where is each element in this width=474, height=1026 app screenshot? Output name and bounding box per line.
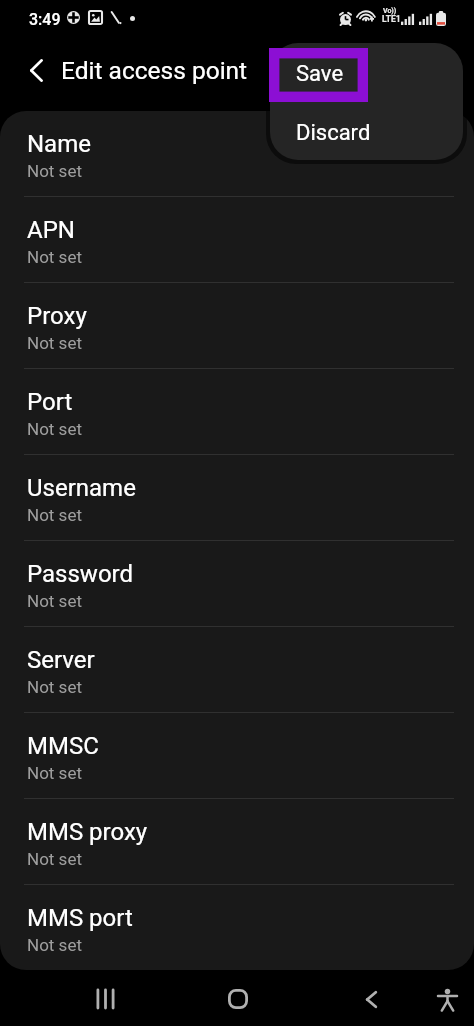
staticText: Not set: [27, 333, 82, 353]
staticText: Discard: [296, 120, 371, 146]
staticText: Not set: [27, 763, 82, 783]
button[interactable]: MMSC: [0, 713, 474, 799]
button[interactable]: APN: [0, 197, 474, 283]
staticText: Username: [27, 474, 136, 502]
button[interactable]: Server: [0, 627, 474, 713]
button[interactable]: Username: [0, 455, 474, 541]
staticText: Save: [296, 61, 344, 87]
staticText: Password: [27, 560, 134, 588]
button[interactable]: Accessibility: [416, 970, 474, 1026]
staticText: APN: [27, 216, 75, 244]
staticText: Not set: [27, 161, 82, 181]
button[interactable]: Back: [12, 48, 56, 92]
button[interactable]: Recent apps: [72, 970, 138, 1026]
staticText: Not set: [27, 419, 82, 439]
button[interactable]: Discard: [270, 104, 463, 160]
staticText: Not set: [27, 849, 82, 869]
button[interactable]: Name: [0, 111, 474, 197]
staticText: Not set: [27, 677, 82, 697]
staticText: 3:49: [29, 10, 61, 29]
button[interactable]: MMS proxy: [0, 799, 474, 885]
staticText: MMSC: [27, 732, 99, 760]
staticText: Not set: [27, 935, 82, 955]
button[interactable]: MMS port: [0, 885, 474, 970]
staticText: LTE1: [382, 14, 401, 24]
button[interactable]: Save: [264, 43, 373, 107]
button[interactable]: Home: [205, 970, 271, 1026]
staticText: Name: [27, 130, 91, 158]
staticText: Not set: [27, 505, 82, 525]
staticText: Not set: [27, 591, 82, 611]
button[interactable]: Port: [0, 369, 474, 455]
staticText: Proxy: [27, 302, 87, 330]
button[interactable]: Password: [0, 541, 474, 627]
staticText: Vo)): [383, 7, 397, 15]
staticText: Edit access point: [61, 56, 248, 85]
staticText: MMS port: [27, 904, 133, 932]
staticText: Port: [27, 388, 73, 416]
staticText: Not set: [27, 247, 82, 267]
staticText: Server: [27, 646, 95, 674]
button[interactable]: Back: [338, 970, 404, 1026]
button[interactable]: Proxy: [0, 283, 474, 369]
staticText: MMS proxy: [27, 818, 148, 846]
